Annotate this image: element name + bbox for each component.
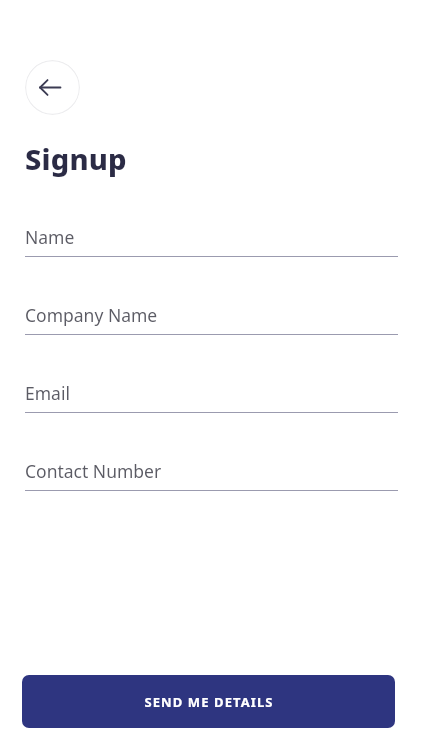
button[interactable]: Company Name bbox=[25, 303, 398, 335]
staticText: SEND ME DETAILS bbox=[144, 693, 274, 711]
staticText: Email bbox=[25, 381, 70, 405]
staticText: Name bbox=[25, 225, 75, 249]
staticText: Contact Number bbox=[25, 459, 162, 483]
button[interactable]: Name bbox=[25, 225, 398, 257]
button[interactable]: Back bbox=[25, 60, 80, 115]
staticText: Signup bbox=[25, 139, 127, 178]
button[interactable]: Email bbox=[25, 381, 398, 413]
button[interactable]: Contact Number bbox=[25, 459, 398, 491]
button[interactable]: SEND ME DETAILS bbox=[22, 675, 395, 728]
staticText: Company Name bbox=[25, 303, 158, 327]
